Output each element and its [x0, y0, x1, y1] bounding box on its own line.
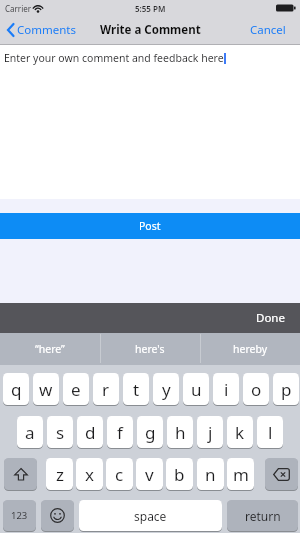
staticText: j — [208, 421, 213, 444]
staticText: Write a Comment — [100, 22, 201, 38]
staticText: q — [11, 378, 22, 401]
staticText: v — [145, 463, 154, 486]
button[interactable]: r — [93, 373, 119, 405]
staticText: “here” — [35, 342, 65, 356]
button[interactable]: f — [107, 416, 133, 448]
button[interactable]: k — [227, 416, 253, 448]
button[interactable]: v — [136, 458, 163, 490]
staticText: u — [191, 378, 202, 401]
button[interactable]: w — [33, 373, 59, 405]
button[interactable]: u — [183, 373, 209, 405]
button[interactable]: Comments — [17, 16, 76, 44]
staticText: return — [245, 508, 281, 524]
button[interactable]: t — [123, 373, 149, 405]
staticText: n — [205, 463, 216, 486]
staticText: y — [162, 378, 171, 401]
staticText: m — [233, 463, 249, 486]
button[interactable]: x — [76, 458, 103, 490]
button[interactable]: i — [213, 373, 239, 405]
staticText: Done — [256, 310, 285, 326]
staticText: i — [224, 378, 229, 401]
button[interactable]: l — [257, 416, 283, 448]
button[interactable]: Done — [240, 303, 300, 333]
button[interactable]: hereby — [200, 333, 300, 365]
staticText: x — [85, 463, 94, 486]
button[interactable]: z — [46, 458, 73, 490]
staticText: b — [174, 463, 185, 486]
staticText: e — [71, 378, 81, 401]
button[interactable]: s — [47, 416, 73, 448]
staticText: c — [115, 463, 124, 486]
button[interactable] — [41, 500, 74, 531]
staticText: a — [25, 421, 35, 444]
staticText: here's — [135, 342, 165, 356]
staticText: r — [102, 378, 110, 401]
button[interactable]: return — [227, 500, 298, 531]
staticText: Carrier — [5, 3, 32, 14]
staticText: Cancel — [250, 22, 286, 38]
button[interactable]: Cancel — [230, 16, 286, 44]
button[interactable]: g — [137, 416, 163, 448]
button[interactable]: y — [153, 373, 179, 405]
staticText: f — [117, 421, 123, 444]
button[interactable] — [4, 458, 37, 490]
staticText: z — [56, 463, 64, 486]
staticText: Comments — [17, 22, 76, 38]
staticText: k — [235, 421, 245, 444]
button[interactable] — [265, 458, 298, 490]
button[interactable]: q — [3, 373, 29, 405]
button[interactable]: here's — [100, 333, 200, 365]
staticText: space — [134, 508, 167, 524]
staticText: hereby — [233, 342, 268, 356]
button[interactable]: p — [273, 373, 299, 405]
staticText: 123 — [11, 509, 28, 522]
staticText: 5:55 PM — [135, 3, 166, 14]
staticText: w — [39, 378, 53, 401]
button[interactable]: d — [77, 416, 103, 448]
staticText: h — [175, 421, 186, 444]
button[interactable]: e — [63, 373, 89, 405]
staticText: l — [268, 421, 273, 444]
button[interactable]: b — [166, 458, 193, 490]
staticText: t — [133, 378, 140, 401]
button[interactable]: 123 — [3, 500, 36, 531]
staticText: o — [251, 378, 262, 401]
button[interactable]: n — [197, 458, 224, 490]
button[interactable]: c — [106, 458, 133, 490]
button[interactable]: h — [167, 416, 193, 448]
button[interactable]: “here” — [0, 333, 100, 365]
button[interactable]: o — [243, 373, 269, 405]
staticText: d — [85, 421, 96, 444]
staticText: s — [56, 421, 65, 444]
staticText: p — [281, 378, 292, 401]
button[interactable]: space — [79, 500, 222, 531]
staticText: Enter your own comment and feedback here — [4, 51, 224, 65]
staticText: g — [145, 421, 156, 444]
button[interactable]: a — [17, 416, 43, 448]
staticText: Post — [139, 219, 161, 233]
button[interactable]: Post — [0, 213, 300, 239]
button[interactable]: j — [197, 416, 223, 448]
button[interactable]: m — [227, 458, 254, 490]
